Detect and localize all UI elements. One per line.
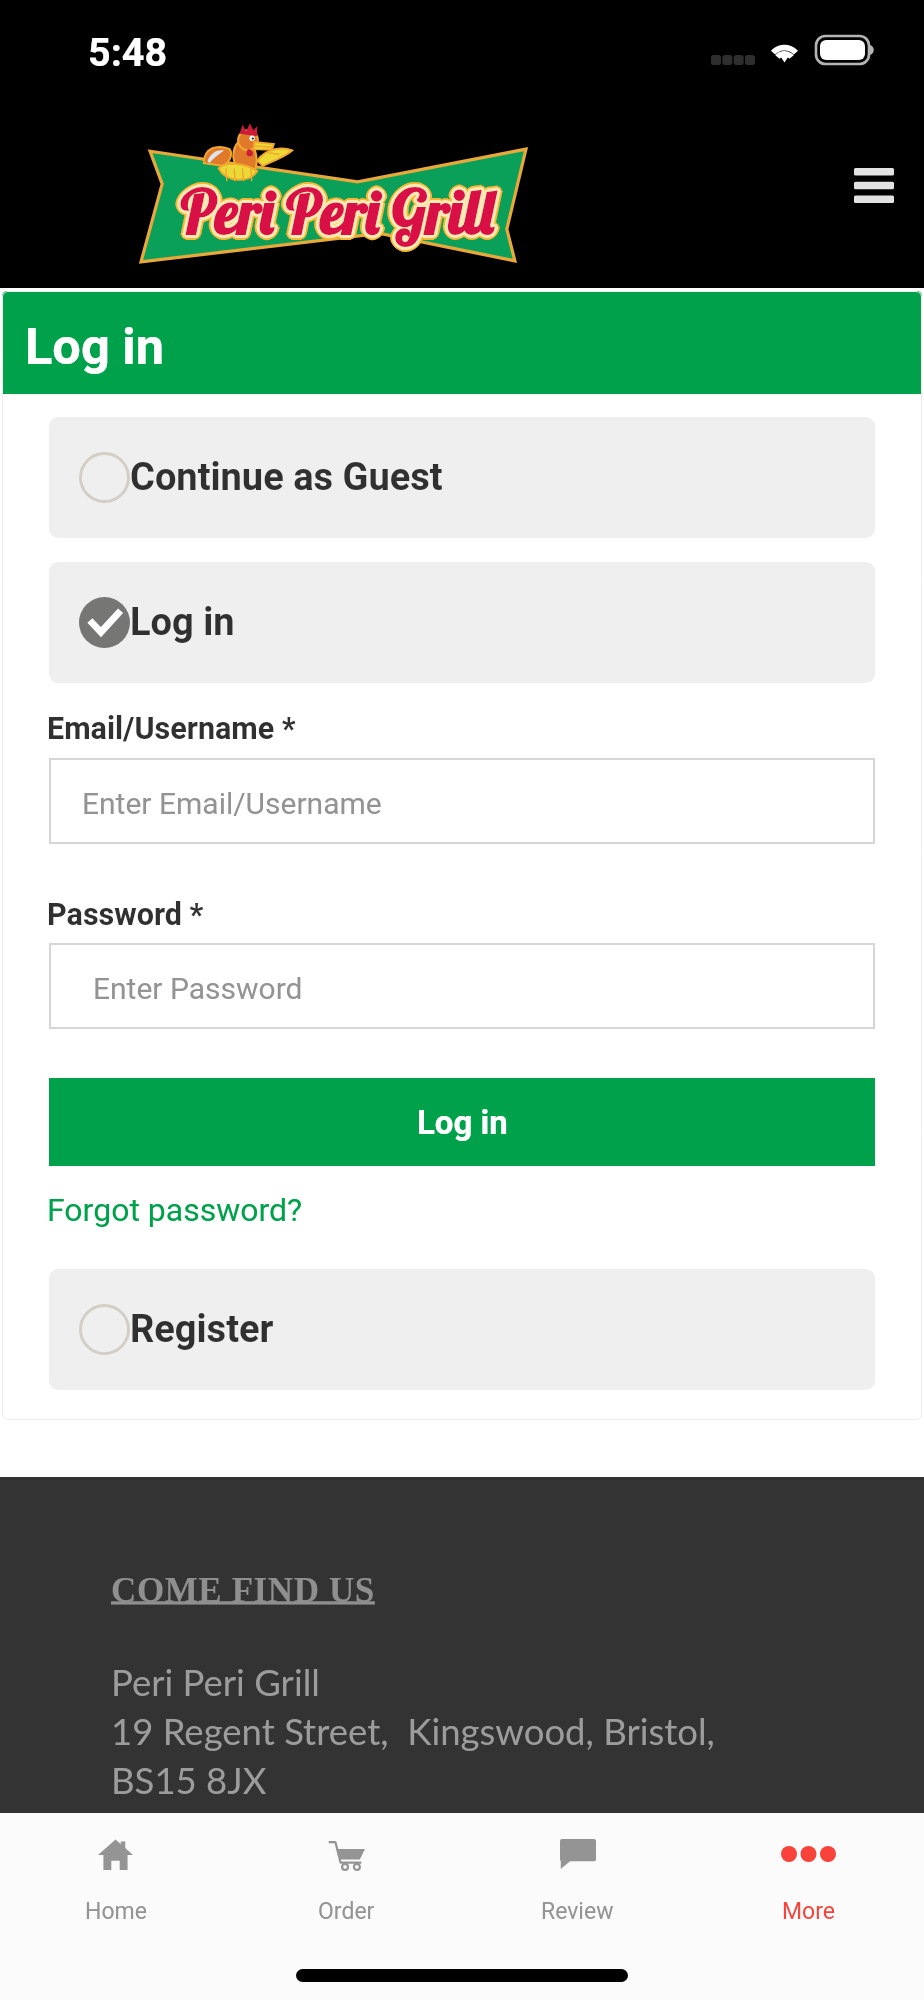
button[interactable]: More <box>693 1813 924 1935</box>
staticText: Peri Peri Grill <box>180 172 493 247</box>
staticText: Peri Peri Grill <box>186 174 499 249</box>
staticText: Peri Peri Grill <box>179 170 492 245</box>
button[interactable]: Log in <box>49 562 875 683</box>
staticText: Enter Email/Username <box>82 786 382 821</box>
staticText: Peri Peri Grill <box>179 178 492 253</box>
button[interactable]: Menu <box>840 151 908 219</box>
staticText: Log in <box>130 600 235 645</box>
staticText: Peri Peri Grill <box>178 171 491 246</box>
button[interactable]: Continue as Guest <box>49 417 875 538</box>
staticText: Log in <box>25 317 164 376</box>
staticText: Peri Peri Grill <box>180 176 493 251</box>
staticText: Peri Peri Grill <box>183 178 496 253</box>
staticText: Peri Peri Grill <box>181 177 494 252</box>
staticText: Peri Peri Grill <box>178 177 491 252</box>
staticText: Forgot password? <box>47 1191 303 1229</box>
staticText: Peri Peri Grill <box>182 176 495 251</box>
staticText: Continue as Guest <box>130 455 443 500</box>
staticText: Peri Peri Grill <box>181 179 494 254</box>
staticText: More <box>782 1898 835 1925</box>
staticText: Peri Peri Grill <box>177 172 490 247</box>
staticText: COME FIND US <box>111 1571 375 1610</box>
staticText: Peri Peri Grill <box>183 170 496 245</box>
staticText: Peri Peri Grill <box>181 169 494 244</box>
staticText: Password * <box>47 897 204 933</box>
staticText: Peri Peri Grill <box>183 172 496 247</box>
staticText: Peri Peri Grill <box>184 177 497 252</box>
staticText: Peri Peri Grill <box>179 173 492 248</box>
button[interactable]: Log in <box>49 1078 875 1166</box>
button[interactable]: Order <box>231 1813 462 1935</box>
button[interactable]: Review <box>462 1813 693 1935</box>
button[interactable]: Home <box>0 1813 231 1935</box>
staticText: Peri Peri Grill <box>178 174 491 249</box>
staticText: Peri Peri Grill <box>185 176 498 251</box>
staticText: Email/Username * <box>47 711 296 747</box>
staticText: Home <box>85 1898 147 1925</box>
button[interactable]: Forgot password? <box>47 1191 303 1229</box>
staticText: Peri Peri Grill <box>177 176 490 251</box>
staticText: Enter Password <box>93 971 303 1006</box>
staticText: Peri Peri Grill <box>176 174 489 249</box>
staticText: Peri Peri Grill <box>184 171 497 246</box>
staticText: Peri Peri Grill <box>183 173 496 248</box>
staticText: Peri Peri Grill <box>183 176 496 251</box>
staticText: Review <box>541 1898 614 1925</box>
staticText: Log in <box>417 1103 508 1142</box>
button[interactable]: Enter Password <box>49 943 875 1029</box>
staticText: 5:48 <box>88 29 168 75</box>
staticText: Peri Peri Grill <box>179 172 492 247</box>
button[interactable]: Register <box>49 1269 875 1390</box>
staticText: Peri Peri Grill <box>179 175 492 250</box>
staticText: Peri Peri Grill <box>179 176 492 251</box>
staticText: Peri Peri Grill <box>181 171 494 246</box>
staticText: Register <box>130 1307 274 1352</box>
staticText: Peri Peri Grill <box>184 174 497 249</box>
staticText: Order <box>318 1898 375 1925</box>
staticText: Peri Peri Grill <box>185 172 498 247</box>
staticText: Peri Peri Grill <box>181 174 494 249</box>
staticText: Peri Peri Grill <box>183 175 496 250</box>
staticText: Peri Peri Grill <box>182 172 495 247</box>
staticText: Peri Peri Grill 19 Regent Street, Kingsw… <box>111 1660 715 1802</box>
button[interactable]: Enter Email/Username <box>49 758 875 844</box>
